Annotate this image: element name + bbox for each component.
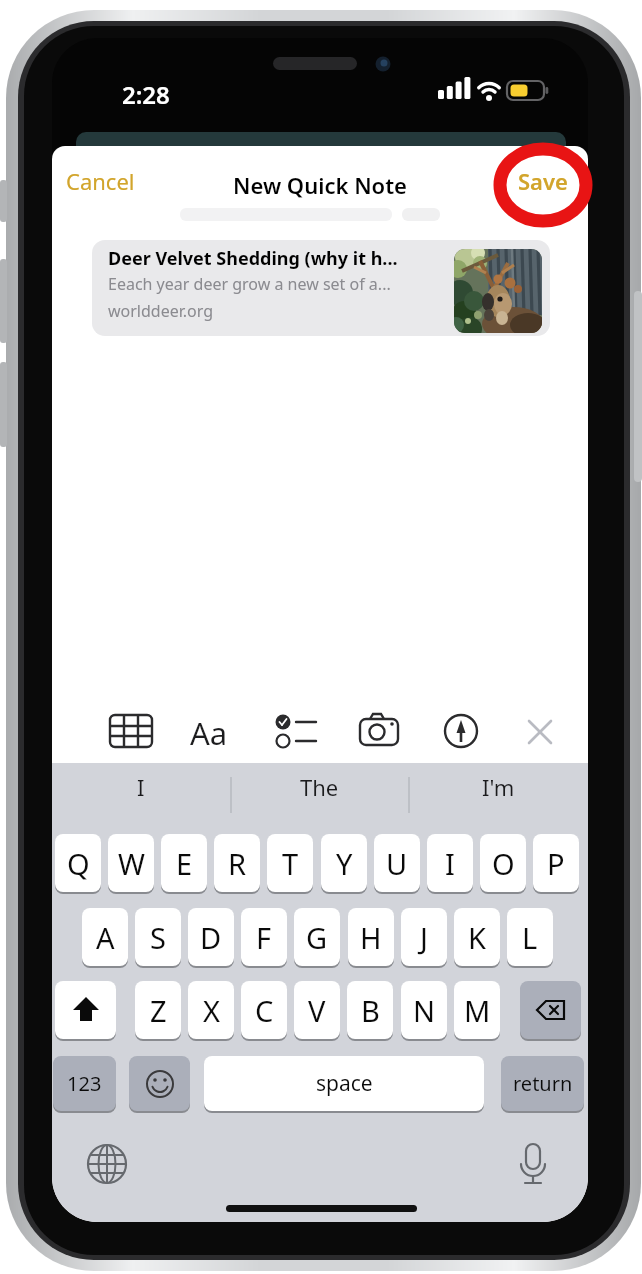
button[interactable]: C	[241, 981, 287, 1039]
button[interactable]: Deer Velvet Shedding (why it h...	[92, 240, 550, 336]
button[interactable]	[129, 1056, 190, 1111]
staticText: E	[176, 844, 193, 883]
button[interactable]: U	[374, 834, 420, 892]
staticText: 2:28	[122, 78, 170, 111]
button[interactable]: S	[135, 908, 181, 966]
staticText: Q	[67, 844, 90, 883]
button[interactable]: Q	[55, 834, 101, 892]
staticText: J	[420, 918, 428, 957]
staticText: L	[522, 918, 538, 957]
staticText: S	[150, 918, 166, 957]
button[interactable]	[81, 1143, 133, 1195]
button[interactable]: A	[82, 908, 128, 966]
staticText: return	[513, 1070, 573, 1097]
staticText: Z	[150, 991, 167, 1030]
button[interactable]: Z	[135, 981, 181, 1039]
button[interactable]	[435, 705, 487, 757]
button[interactable]: W	[108, 834, 154, 892]
button[interactable]: N	[401, 981, 447, 1039]
button[interactable]: M	[454, 981, 500, 1039]
button[interactable]: O	[480, 834, 526, 892]
staticText: U	[386, 844, 408, 883]
staticText: 123	[67, 1070, 102, 1097]
staticText: O	[492, 844, 515, 883]
staticText: T	[282, 844, 299, 883]
button[interactable]: Y	[321, 834, 367, 892]
button[interactable]: I	[52, 752, 230, 822]
staticText: X	[203, 991, 220, 1030]
button[interactable]: L	[507, 908, 553, 966]
staticText: M	[464, 991, 491, 1030]
button[interactable]: X	[188, 981, 234, 1039]
button[interactable]	[105, 705, 157, 757]
button[interactable]: K	[454, 908, 500, 966]
button[interactable]: D	[188, 908, 234, 966]
button[interactable]: G	[294, 908, 340, 966]
staticText: Deer Velvet Shedding (why it h...	[108, 246, 398, 271]
staticText: Save	[518, 166, 568, 196]
button[interactable]	[520, 981, 581, 1039]
staticText: D	[200, 918, 222, 957]
button[interactable]: Cancel	[52, 160, 149, 202]
button[interactable]: H	[348, 908, 394, 966]
button[interactable]	[269, 705, 321, 757]
staticText: V	[308, 991, 326, 1030]
staticText: G	[306, 918, 328, 957]
button[interactable]: space	[204, 1056, 484, 1111]
button[interactable]: R	[214, 834, 260, 892]
staticText: W	[118, 844, 145, 883]
button[interactable]: P	[533, 834, 579, 892]
staticText: Y	[336, 844, 353, 883]
staticText: P	[547, 844, 565, 883]
button[interactable]	[55, 981, 116, 1039]
button[interactable]: I'm	[409, 752, 588, 822]
button[interactable]	[507, 1143, 559, 1195]
staticText: Cancel	[66, 166, 135, 196]
staticText: Aa	[190, 712, 228, 754]
staticText: R	[228, 844, 247, 883]
button[interactable]	[353, 705, 405, 757]
staticText: N	[413, 991, 436, 1030]
button[interactable]: F	[241, 908, 287, 966]
staticText: I'm	[482, 772, 515, 802]
staticText: Eeach year deer grow a new set of a...	[108, 273, 391, 295]
staticText: C	[255, 991, 274, 1030]
staticText: I	[137, 772, 145, 802]
button[interactable]: I	[427, 834, 473, 892]
staticText: The	[300, 772, 339, 802]
button[interactable]: T	[267, 834, 313, 892]
button[interactable]: 123	[53, 1056, 116, 1111]
button[interactable]: return	[501, 1056, 584, 1111]
staticText: space	[316, 1069, 373, 1098]
button[interactable]: The	[230, 752, 409, 822]
staticText: K	[468, 918, 486, 957]
button[interactable]	[187, 705, 239, 757]
button[interactable]: E	[161, 834, 207, 892]
staticText: A	[96, 918, 115, 957]
button[interactable]: Save	[504, 160, 582, 202]
button[interactable]: J	[401, 908, 447, 966]
staticText: worlddeer.org	[108, 300, 214, 322]
staticText: B	[361, 991, 380, 1030]
button[interactable]: B	[347, 981, 393, 1039]
staticText: H	[360, 918, 382, 957]
staticText: New Quick Note	[233, 170, 407, 200]
button[interactable]	[514, 705, 566, 757]
staticText: F	[256, 918, 272, 957]
button[interactable]: V	[294, 981, 340, 1039]
staticText: I	[445, 844, 455, 883]
